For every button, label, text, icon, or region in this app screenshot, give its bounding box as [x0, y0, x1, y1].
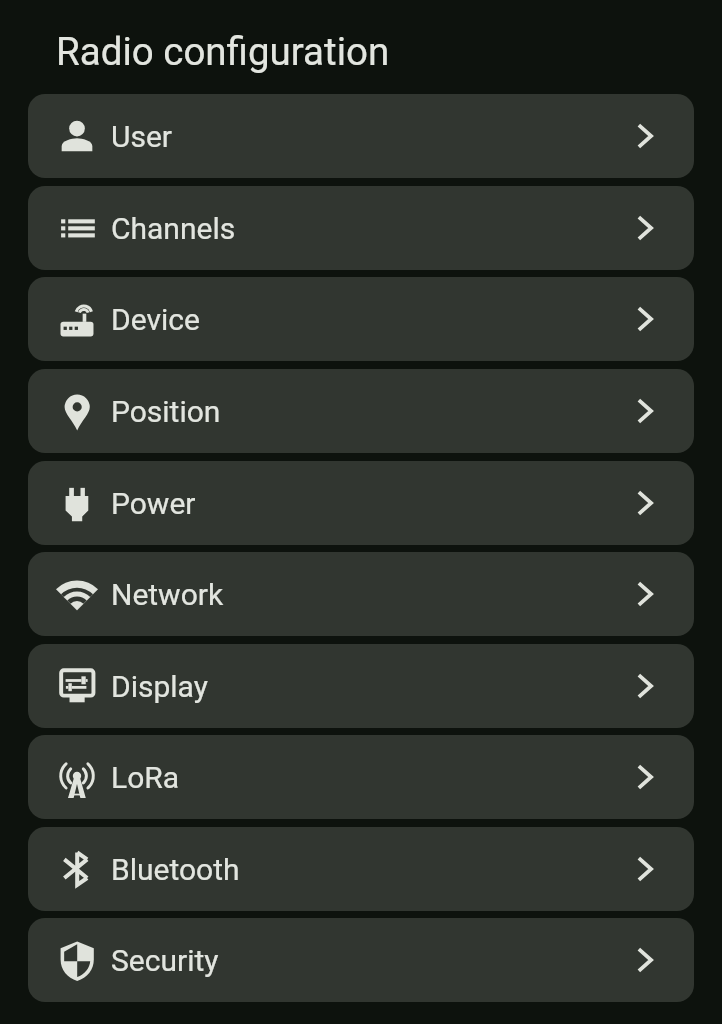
- other: Open Security settings: [622, 937, 668, 983]
- button[interactable]: LoRa: [28, 735, 694, 819]
- button[interactable]: Network: [28, 552, 694, 636]
- button[interactable]: Bluetooth: [28, 827, 694, 911]
- staticText: Bluetooth: [111, 852, 240, 887]
- staticText: User: [111, 119, 173, 154]
- staticText: Channels: [111, 211, 236, 246]
- other: Open LoRa settings: [622, 754, 668, 800]
- other: Open Network settings: [622, 571, 668, 617]
- other: Open User settings: [622, 113, 668, 159]
- staticText: Radio configuration: [56, 29, 390, 74]
- button[interactable]: Security: [28, 918, 694, 1002]
- button[interactable]: Power: [28, 461, 694, 545]
- staticText: LoRa: [111, 760, 180, 795]
- button[interactable]: Position: [28, 369, 694, 453]
- staticText: Power: [111, 486, 196, 521]
- other: Open Device settings: [622, 296, 668, 342]
- button[interactable]: Device: [28, 277, 694, 361]
- staticText: Security: [111, 943, 219, 978]
- staticText: Position: [111, 394, 221, 429]
- button[interactable]: User: [28, 94, 694, 178]
- staticText: Device: [111, 302, 200, 337]
- other: Open Bluetooth settings: [622, 846, 668, 892]
- staticText: Display: [111, 669, 208, 704]
- button[interactable]: Channels: [28, 186, 694, 270]
- other: Open Display settings: [622, 663, 668, 709]
- other: Open Position settings: [622, 388, 668, 434]
- other: Open Power settings: [622, 480, 668, 526]
- other: Open Channels settings: [622, 205, 668, 251]
- staticText: Network: [111, 577, 224, 612]
- button[interactable]: Display: [28, 644, 694, 728]
